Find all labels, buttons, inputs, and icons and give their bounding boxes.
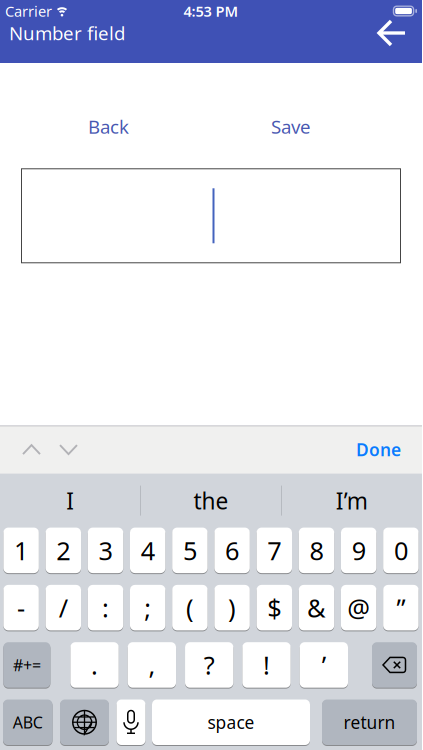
staticText: /	[59, 591, 68, 624]
button[interactable]: /	[46, 585, 81, 630]
button[interactable]: ;	[130, 585, 165, 630]
staticText: ”	[396, 591, 405, 624]
staticText: .	[91, 648, 98, 682]
button[interactable]: #+=	[3, 642, 50, 688]
button[interactable]: 9	[341, 528, 376, 573]
button[interactable]: )	[214, 585, 250, 630]
button[interactable]: Back	[88, 114, 129, 139]
staticText: 5	[183, 533, 197, 567]
staticText: $	[267, 591, 281, 624]
button[interactable]: .	[70, 642, 119, 688]
button[interactable]: space	[152, 699, 310, 745]
staticText: ,	[148, 648, 155, 682]
button[interactable]: 3	[88, 528, 123, 573]
button[interactable]: ”	[383, 585, 419, 630]
button[interactable]: &	[299, 585, 334, 630]
staticText: ABC	[13, 712, 43, 733]
button[interactable]: 8	[299, 528, 334, 573]
button[interactable]: the	[141, 485, 281, 516]
button[interactable]: @	[341, 585, 376, 630]
button[interactable]: Previous field	[22, 444, 41, 456]
button[interactable]: Delete	[372, 642, 417, 688]
staticText: 1	[14, 533, 28, 567]
button[interactable]: return	[322, 699, 417, 745]
staticText: @	[347, 591, 370, 624]
button[interactable]: (	[172, 585, 208, 630]
staticText: 0	[394, 533, 408, 567]
staticText: 6	[225, 533, 239, 567]
staticText: Save	[271, 114, 311, 139]
button[interactable]: !	[242, 642, 291, 688]
staticText: space	[207, 711, 254, 734]
staticText: 7	[267, 533, 281, 567]
staticText: 8	[309, 533, 323, 567]
button[interactable]: 7	[257, 528, 292, 573]
button[interactable]: Next field	[59, 444, 78, 456]
staticText: I	[66, 485, 74, 516]
staticText: (	[186, 591, 194, 624]
staticText: Number field	[9, 21, 125, 45]
button[interactable]: ,	[128, 642, 176, 688]
button[interactable]: I	[0, 485, 141, 516]
button[interactable]: 6	[214, 528, 250, 573]
button[interactable]: ?	[185, 642, 233, 688]
staticText: #+=	[13, 654, 41, 675]
button[interactable]: Next keyboard	[60, 699, 109, 745]
staticText: 4:53 PM	[183, 1, 238, 21]
button[interactable]: -	[3, 585, 39, 630]
staticText: the	[193, 485, 228, 516]
button[interactable]: Save	[271, 114, 311, 139]
staticText: !	[263, 648, 270, 682]
staticText: I’m	[336, 485, 368, 516]
button[interactable]: 1	[3, 528, 39, 573]
button[interactable]: ABC	[3, 699, 52, 745]
button[interactable]: $	[257, 585, 292, 630]
staticText: 9	[352, 533, 366, 567]
button[interactable]: Dictate	[116, 699, 145, 745]
staticText: Done	[356, 438, 401, 461]
button[interactable]: 4	[130, 528, 165, 573]
button[interactable]: Number field	[21, 168, 401, 263]
staticText: &	[307, 591, 326, 624]
staticText: ;	[144, 591, 151, 624]
staticText: Carrier	[5, 1, 52, 21]
staticText: ?	[204, 648, 215, 682]
staticText: return	[343, 711, 395, 734]
staticText: ’	[322, 648, 326, 682]
button[interactable]: ’	[300, 642, 348, 688]
staticText: -	[17, 591, 25, 624]
button[interactable]: 5	[172, 528, 208, 573]
button[interactable]: I’m	[281, 485, 422, 516]
button[interactable]: Back	[369, 19, 422, 46]
staticText: 2	[56, 533, 70, 567]
button[interactable]: :	[88, 585, 123, 630]
staticText: :	[102, 591, 109, 624]
button[interactable]: Done	[356, 438, 401, 461]
button[interactable]: 2	[46, 528, 81, 573]
staticText: 3	[98, 533, 112, 567]
staticText: 4	[141, 533, 155, 567]
button[interactable]: 0	[383, 528, 419, 573]
staticText: Back	[88, 114, 129, 139]
staticText: )	[228, 591, 236, 624]
